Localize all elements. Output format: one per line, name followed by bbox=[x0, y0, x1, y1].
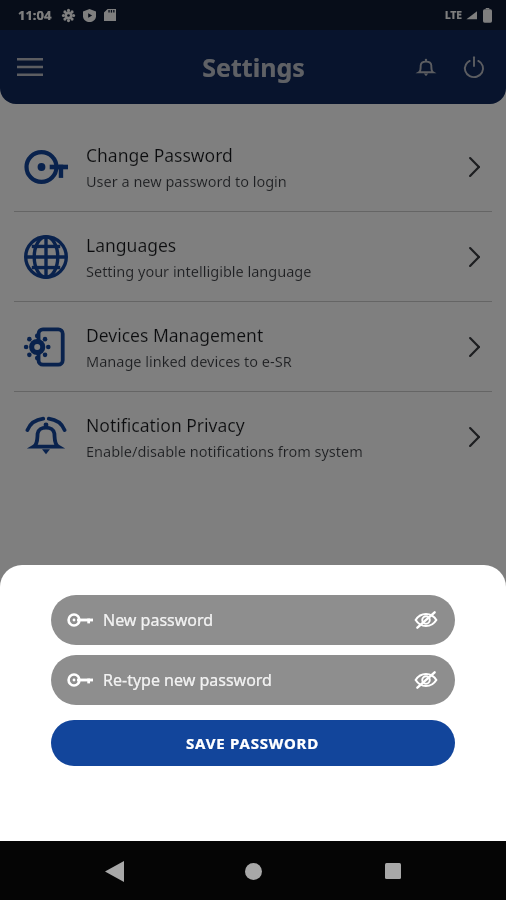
staticText: SAVE PASSWORD bbox=[186, 733, 320, 753]
button[interactable]: Log out bbox=[450, 43, 498, 91]
button[interactable]: Home bbox=[227, 845, 279, 897]
button[interactable]: Notifications bbox=[402, 43, 450, 91]
button[interactable]: Open navigation menu bbox=[8, 45, 52, 89]
staticText: 11:04 bbox=[18, 6, 52, 24]
button[interactable]: Devices Management bbox=[0, 302, 506, 391]
button[interactable]: Back bbox=[88, 845, 140, 897]
staticText: LTE bbox=[445, 8, 462, 22]
button[interactable]: Re-type new password bbox=[51, 655, 455, 705]
staticText: User a new password to login bbox=[86, 171, 287, 191]
button[interactable]: Recent apps bbox=[367, 845, 419, 897]
staticText: Settings bbox=[202, 50, 305, 84]
staticText: Setting your intelligible language bbox=[86, 261, 312, 281]
staticText: New password bbox=[103, 609, 411, 631]
button[interactable]: New password bbox=[51, 595, 455, 645]
staticText: Languages bbox=[86, 233, 177, 257]
button[interactable]: Languages bbox=[0, 212, 506, 301]
staticText: Enable/disable notifications from system bbox=[86, 441, 363, 461]
button[interactable]: Show password bbox=[411, 605, 441, 635]
button[interactable]: Notification Privacy bbox=[0, 392, 506, 481]
staticText: Change Password bbox=[86, 143, 233, 167]
button[interactable]: SAVE PASSWORD bbox=[51, 720, 455, 766]
staticText: Notification Privacy bbox=[86, 413, 245, 437]
staticText: Re-type new password bbox=[103, 669, 411, 691]
button[interactable]: Change Password bbox=[0, 122, 506, 211]
staticText: Devices Management bbox=[86, 323, 264, 347]
button[interactable]: Show password bbox=[411, 665, 441, 695]
staticText: Manage linked devices to e-SR bbox=[86, 351, 292, 371]
